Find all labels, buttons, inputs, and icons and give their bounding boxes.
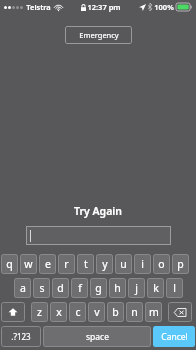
button[interactable]: x bbox=[50, 302, 67, 322]
button[interactable]: g bbox=[90, 278, 107, 298]
button[interactable]: Emergency bbox=[65, 26, 132, 44]
button[interactable]: t bbox=[77, 254, 94, 274]
button[interactable]: Backspace bbox=[168, 302, 192, 322]
button[interactable]: k bbox=[147, 278, 164, 298]
staticText: Try Again bbox=[0, 204, 196, 218]
staticText: t bbox=[84, 257, 88, 271]
button[interactable]: v bbox=[88, 302, 105, 322]
staticText: o bbox=[158, 257, 165, 271]
staticText: space bbox=[86, 331, 109, 343]
button[interactable]: f bbox=[71, 278, 88, 298]
staticText: u bbox=[120, 257, 127, 271]
staticText: Cancel bbox=[161, 331, 188, 343]
staticText: e bbox=[45, 257, 51, 271]
button[interactable]: m bbox=[145, 302, 162, 322]
button[interactable]: p bbox=[172, 254, 189, 274]
button[interactable]: z bbox=[31, 302, 48, 322]
staticText: 12:37 pm bbox=[87, 2, 121, 12]
staticText: .?123 bbox=[11, 331, 31, 342]
staticText: n bbox=[131, 305, 138, 319]
button[interactable]: Cancel bbox=[153, 326, 195, 347]
button[interactable]: h bbox=[109, 278, 126, 298]
staticText: p bbox=[177, 257, 184, 271]
staticText: j bbox=[135, 281, 138, 295]
button[interactable]: c bbox=[69, 302, 86, 322]
button[interactable]: s bbox=[33, 278, 50, 298]
staticText: a bbox=[20, 281, 26, 295]
button[interactable]: e bbox=[39, 254, 56, 274]
staticText: g bbox=[95, 281, 102, 295]
staticText: z bbox=[37, 305, 42, 319]
button[interactable]: .?123 bbox=[1, 326, 41, 347]
button[interactable]: y bbox=[96, 254, 113, 274]
staticText: i bbox=[141, 257, 144, 271]
staticText: h bbox=[114, 281, 121, 295]
staticText: l bbox=[173, 281, 176, 295]
button[interactable]: j bbox=[128, 278, 145, 298]
staticText: Telstra bbox=[26, 2, 51, 12]
button[interactable]: b bbox=[107, 302, 124, 322]
button[interactable]: o bbox=[153, 254, 170, 274]
staticText: w bbox=[24, 257, 33, 271]
button[interactable] bbox=[26, 226, 171, 245]
staticText: x bbox=[56, 305, 62, 319]
button[interactable]: r bbox=[58, 254, 75, 274]
button[interactable]: i bbox=[134, 254, 151, 274]
staticText: s bbox=[39, 281, 45, 295]
staticText: k bbox=[153, 281, 159, 295]
button[interactable]: n bbox=[126, 302, 143, 322]
button[interactable]: space bbox=[43, 326, 151, 347]
button[interactable]: l bbox=[166, 278, 183, 298]
button[interactable]: d bbox=[52, 278, 69, 298]
staticText: y bbox=[102, 257, 108, 271]
button[interactable]: w bbox=[20, 254, 37, 274]
button[interactable]: Shift bbox=[1, 302, 25, 322]
button[interactable]: a bbox=[14, 278, 31, 298]
staticText: 100% bbox=[154, 2, 174, 12]
staticText: q bbox=[6, 257, 13, 271]
staticText: c bbox=[75, 305, 81, 319]
staticText: m bbox=[149, 305, 159, 319]
staticText: b bbox=[112, 305, 119, 319]
staticText: d bbox=[57, 281, 64, 295]
button[interactable]: u bbox=[115, 254, 132, 274]
staticText: Emergency bbox=[79, 30, 119, 40]
button[interactable]: q bbox=[1, 254, 18, 274]
staticText: v bbox=[94, 305, 100, 319]
staticText: r bbox=[64, 257, 69, 271]
staticText: f bbox=[78, 281, 82, 295]
